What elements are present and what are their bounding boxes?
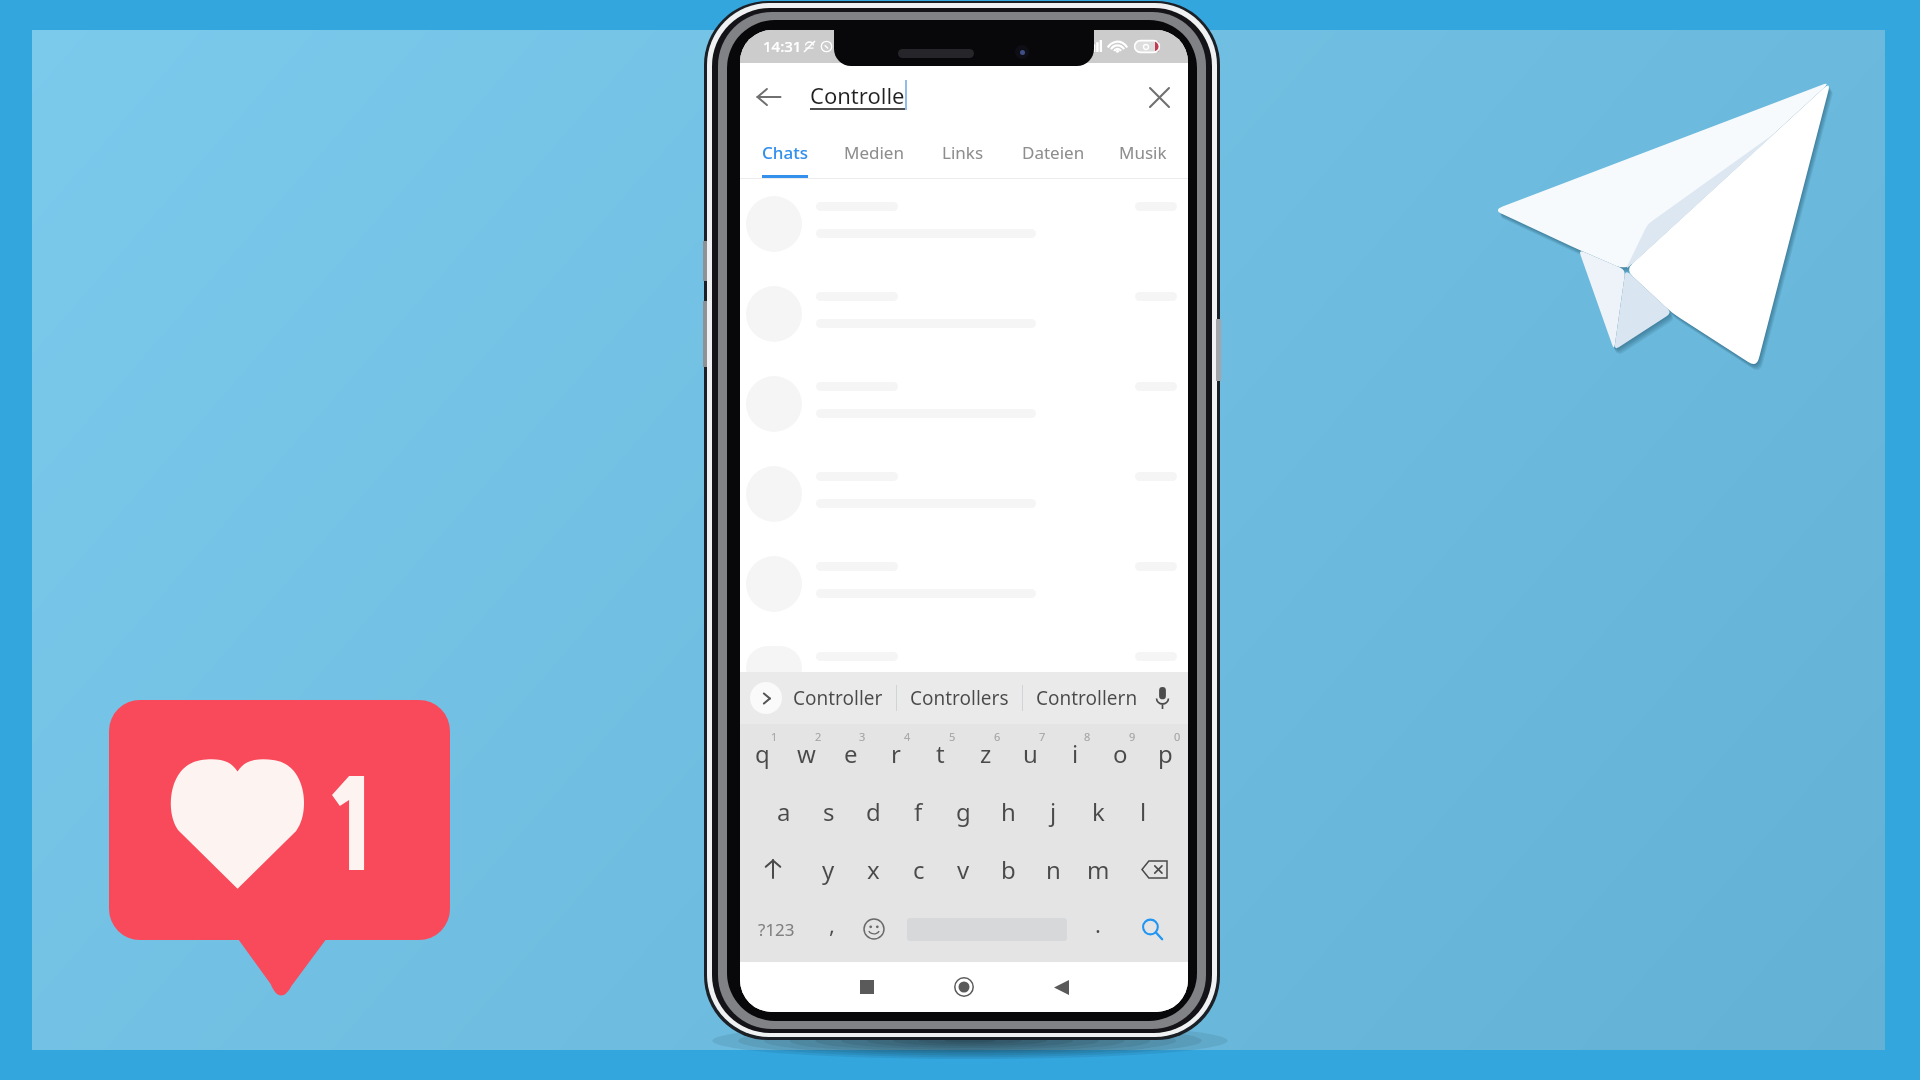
staticText: Chats	[762, 141, 808, 164]
button[interactable]: o	[1098, 724, 1143, 782]
button[interactable]: Clear search	[1137, 75, 1181, 119]
staticText: g	[956, 795, 971, 828]
staticText: Controller	[793, 685, 883, 711]
button[interactable]: Recents	[845, 965, 889, 1009]
button[interactable]: s	[806, 782, 851, 840]
button[interactable]: Backspace	[1121, 840, 1188, 898]
button[interactable]: Voice input	[1144, 680, 1180, 716]
button[interactable]: Chats	[740, 131, 829, 179]
button[interactable]: f	[896, 782, 941, 840]
button[interactable]: Emoji	[852, 898, 896, 960]
button[interactable]: Links	[918, 131, 1008, 179]
staticText: 1	[771, 729, 778, 744]
button[interactable]: l	[1121, 782, 1166, 840]
button[interactable]: v	[941, 840, 986, 898]
staticText: p	[1158, 737, 1173, 770]
staticText: 4	[904, 729, 911, 744]
staticText: Controlle	[810, 80, 905, 110]
staticText: y	[822, 853, 835, 886]
button[interactable]: k	[1076, 782, 1121, 840]
button[interactable]: u	[1008, 724, 1053, 782]
button[interactable]: Controller	[780, 675, 896, 721]
staticText: a	[777, 795, 791, 828]
button[interactable]: ?123	[740, 898, 812, 960]
staticText: ?123	[758, 918, 795, 941]
button[interactable]: q	[740, 724, 784, 782]
button[interactable]: d	[851, 782, 896, 840]
button[interactable]: ,	[812, 898, 852, 960]
staticText: z	[980, 737, 992, 770]
button[interactable]: Home	[942, 965, 986, 1009]
button[interactable]: x	[851, 840, 896, 898]
staticText: c	[913, 853, 925, 886]
button[interactable]: Medien	[829, 131, 918, 179]
button[interactable]: Musik	[1098, 131, 1188, 179]
staticText: Medien	[844, 141, 904, 164]
staticText: d	[866, 795, 881, 828]
staticText: 0	[1174, 729, 1181, 744]
button[interactable]: i	[1053, 724, 1098, 782]
button[interactable]: Controllern	[1023, 675, 1151, 721]
staticText: 14:31	[763, 36, 802, 56]
staticText: x	[867, 853, 880, 886]
staticText: e	[844, 737, 858, 770]
button[interactable]: y	[806, 840, 851, 898]
staticText: j	[1050, 795, 1057, 828]
button[interactable]: r	[873, 724, 918, 782]
staticText: o	[1113, 737, 1128, 770]
staticText: v	[957, 853, 970, 886]
staticText: t	[936, 737, 945, 770]
button[interactable]: a	[762, 782, 806, 840]
button[interactable]: g	[941, 782, 986, 840]
staticText: Musik	[1119, 141, 1167, 164]
button[interactable]: p	[1143, 724, 1188, 782]
staticText: u	[1023, 737, 1038, 770]
staticText: .	[1095, 909, 1101, 939]
staticText: n	[1046, 853, 1061, 886]
staticText: w	[797, 737, 816, 770]
staticText: s	[823, 795, 835, 828]
button[interactable]: More suggestions	[750, 682, 782, 714]
button[interactable]: Search	[1117, 898, 1188, 960]
button[interactable]: m	[1076, 840, 1121, 898]
button[interactable]: Shift	[740, 840, 806, 898]
staticText: q	[755, 737, 770, 770]
button[interactable]: b	[986, 840, 1031, 898]
staticText: ,	[829, 909, 835, 939]
staticText: h	[1001, 795, 1016, 828]
staticText: k	[1092, 795, 1105, 828]
button[interactable]: Controllers	[897, 675, 1022, 721]
staticText: 3	[859, 729, 866, 744]
button[interactable]: t	[918, 724, 963, 782]
staticText: 7	[1039, 729, 1046, 744]
button[interactable]: e	[828, 724, 873, 782]
button[interactable]: c	[896, 840, 941, 898]
button[interactable]: n	[1031, 840, 1076, 898]
button[interactable]: z	[963, 724, 1008, 782]
staticText: 5	[949, 729, 956, 744]
staticText: m	[1087, 853, 1110, 886]
button[interactable]: j	[1031, 782, 1076, 840]
button[interactable]: Back	[747, 75, 791, 119]
staticText: l	[1140, 795, 1147, 828]
button[interactable]: h	[986, 782, 1031, 840]
button[interactable]: Space	[896, 898, 1078, 960]
staticText: r	[891, 737, 901, 770]
button[interactable]: .	[1078, 898, 1117, 960]
staticText: Controllers	[910, 685, 1009, 711]
staticText: 2	[815, 729, 822, 744]
staticText: Controllern	[1036, 685, 1138, 711]
staticText: Links	[942, 141, 984, 164]
staticText: i	[1072, 737, 1079, 770]
staticText: b	[1001, 853, 1016, 886]
staticText: 8	[1084, 729, 1091, 744]
staticText: f	[914, 795, 923, 828]
button[interactable]: Back	[1039, 965, 1083, 1009]
button[interactable]: w	[784, 724, 828, 782]
staticText: 9	[1129, 729, 1136, 744]
staticText: Dateien	[1022, 141, 1085, 164]
staticText: 6	[994, 729, 1001, 744]
button[interactable]: Dateien	[1008, 131, 1098, 179]
